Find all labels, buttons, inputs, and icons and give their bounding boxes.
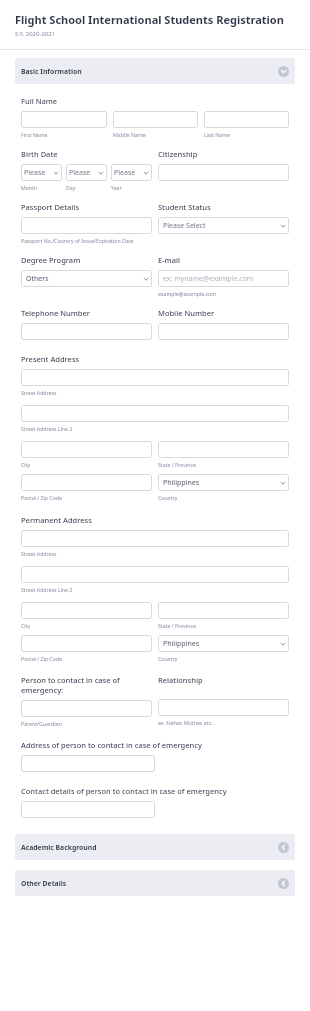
staticText: Others: [26, 274, 142, 284]
staticText: Please: [114, 168, 142, 178]
staticText: Please Select: [163, 221, 279, 231]
staticText: Postal / Zip Code: [21, 655, 62, 662]
staticText: Other Details: [21, 879, 67, 888]
staticText: Country: [158, 655, 178, 662]
staticText: Passport Details: [21, 202, 80, 212]
button[interactable]: Basic Information: [15, 58, 295, 84]
button[interactable]: ex: myname@example.com: [158, 270, 289, 287]
staticText: Postal / Zip Code: [21, 494, 62, 501]
button[interactable]: [21, 530, 289, 547]
button[interactable]: [158, 441, 289, 458]
staticText: Street Address Line 2: [21, 425, 73, 432]
button[interactable]: Please: [111, 164, 152, 181]
staticText: Telephone Number: [21, 308, 90, 318]
staticText: Address of person to contact in case of …: [21, 740, 202, 750]
staticText: Day: [66, 184, 76, 191]
button[interactable]: Others: [21, 270, 152, 287]
button[interactable]: [204, 111, 289, 128]
staticText: Present Address: [21, 354, 80, 364]
staticText: ex: myname@example.com: [163, 274, 254, 284]
staticText: Flight School International Students Reg…: [15, 12, 284, 27]
staticText: First Name: [21, 131, 48, 138]
staticText: Full Name: [21, 96, 58, 106]
staticText: City: [21, 461, 31, 468]
button[interactable]: Expand Academic Background: [278, 842, 289, 853]
staticText: Month: [21, 184, 38, 191]
staticText: E-mail: [158, 255, 181, 265]
button[interactable]: [158, 602, 289, 619]
button[interactable]: [158, 699, 289, 716]
staticText: Academic Background: [21, 843, 97, 852]
staticText: Citizenship: [158, 149, 198, 159]
staticText: State / Province: [158, 622, 196, 629]
staticText: Philippines: [163, 639, 279, 649]
staticText: Last Name: [204, 131, 230, 138]
staticText: S.Y. 2020-2021: [15, 30, 56, 38]
button[interactable]: [21, 700, 152, 717]
button[interactable]: Expand Other Details: [278, 878, 289, 889]
staticText: Permanent Address: [21, 515, 92, 525]
button[interactable]: Please Select: [158, 217, 289, 234]
button[interactable]: Please: [21, 164, 62, 181]
staticText: Middle Name: [113, 131, 146, 138]
button[interactable]: Academic Background: [15, 834, 295, 860]
staticText: Mobile Number: [158, 308, 215, 318]
staticText: Birth Date: [21, 149, 58, 159]
staticText: City: [21, 622, 31, 629]
staticText: ex. Father, Mother, etc.: [158, 719, 213, 726]
button[interactable]: Philippines: [158, 474, 289, 491]
button[interactable]: [21, 474, 152, 491]
staticText: State / Province: [158, 461, 196, 468]
button[interactable]: Philippines: [158, 635, 289, 652]
button[interactable]: [21, 217, 152, 234]
button[interactable]: [158, 164, 289, 181]
staticText: Degree Program: [21, 255, 81, 265]
staticText: Year: [111, 184, 122, 191]
button[interactable]: [21, 111, 107, 128]
staticText: Relationship: [158, 675, 203, 685]
staticText: Passport No./Country of Issue/Expiration…: [21, 237, 134, 244]
button[interactable]: [21, 441, 152, 458]
staticText: Street Address Line 2: [21, 586, 73, 593]
button[interactable]: Please: [66, 164, 107, 181]
button[interactable]: [21, 405, 289, 422]
staticText: Parent/Guardian: [21, 720, 62, 727]
staticText: Basic Information: [21, 67, 82, 76]
button[interactable]: Other Details: [15, 870, 295, 896]
staticText: Student Status: [158, 202, 211, 212]
staticText: Philippines: [163, 478, 279, 488]
staticText: Person to contact in case of emergency:: [21, 675, 152, 695]
button[interactable]: [21, 566, 289, 583]
button[interactable]: [21, 602, 152, 619]
staticText: example@example.com: [158, 290, 217, 297]
staticText: Contact details of person to contact in …: [21, 786, 227, 796]
staticText: Country: [158, 494, 178, 501]
button[interactable]: [113, 111, 198, 128]
staticText: Please: [69, 168, 97, 178]
button[interactable]: [21, 369, 289, 386]
staticText: Please: [24, 168, 52, 178]
button[interactable]: [21, 755, 155, 772]
staticText: Street Address: [21, 550, 57, 557]
button[interactable]: [21, 801, 155, 818]
button[interactable]: [21, 323, 152, 340]
staticText: Street Address: [21, 389, 57, 396]
button[interactable]: Collapse Basic Information: [278, 66, 289, 77]
button[interactable]: [21, 635, 152, 652]
button[interactable]: [158, 323, 289, 340]
